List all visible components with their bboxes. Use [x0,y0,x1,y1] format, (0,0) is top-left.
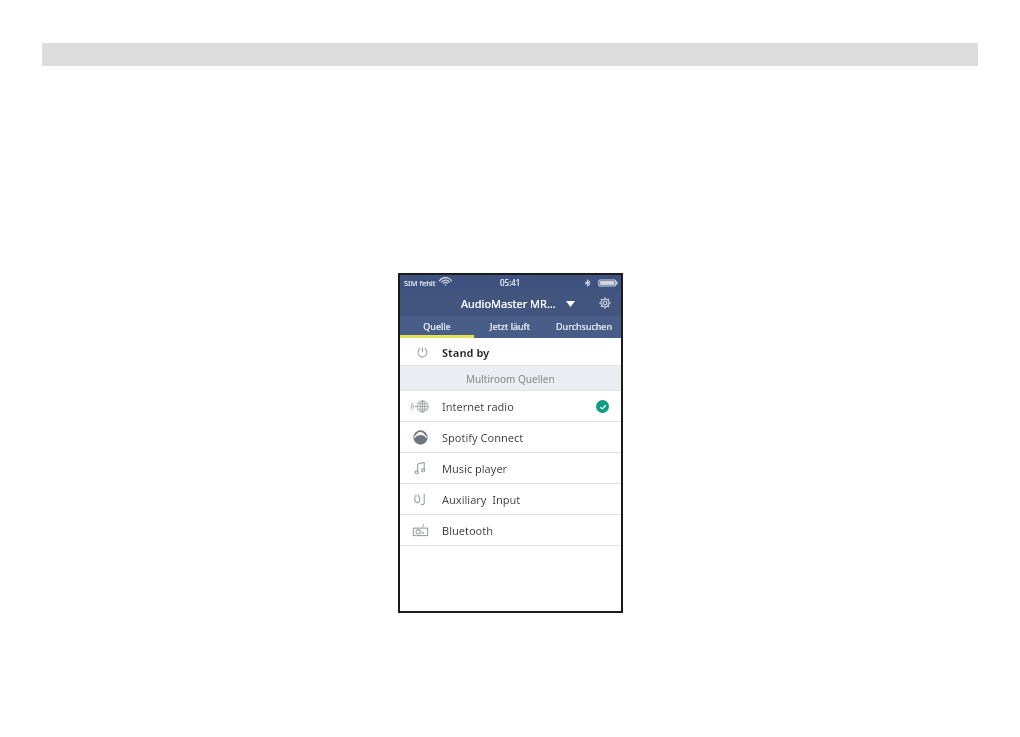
staticText: Durchsuchen [556,320,612,332]
button[interactable]: Einstellungen [596,294,614,312]
staticText: Internet radio [442,399,514,414]
staticText: Auxiliary Input [442,492,521,507]
staticText: Quelle [423,320,451,332]
button[interactable]: Stand by [400,338,621,366]
staticText: 05:41 [500,277,521,288]
button[interactable]: Internet radio [400,391,621,422]
staticText: Multiroom Quellen [466,372,555,386]
staticText: AudioMaster MR… [461,296,556,311]
staticText: Bluetooth [442,523,494,538]
staticText: Music player [442,461,508,476]
button[interactable]: Bluetooth [400,515,621,546]
staticText: Spotify Connect [442,430,524,445]
button[interactable]: Quelle [400,316,473,335]
button[interactable]: Jetzt läuft [473,316,547,335]
staticText: SIM fehlt [404,278,436,288]
button[interactable]: Spotify Connect [400,422,621,453]
button[interactable]: Durchsuchen [547,316,621,335]
staticText: Jetzt läuft [490,320,530,332]
button[interactable]: Auxiliary Input [400,484,621,515]
staticText: Stand by [442,345,490,360]
button[interactable]: Auswahl aufklappen [563,297,577,311]
button[interactable]: Music player [400,453,621,484]
